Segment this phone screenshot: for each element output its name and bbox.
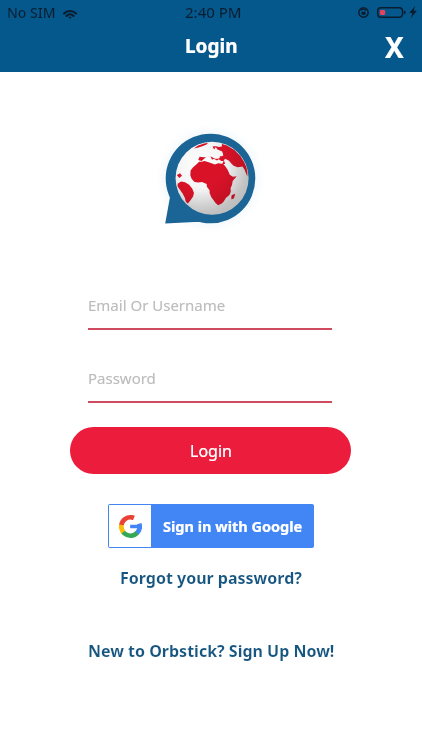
button[interactable]: New to Orbstick? Sign Up Now! <box>78 636 345 666</box>
staticText: Forgot your password? <box>120 567 302 589</box>
staticText: Login <box>190 440 232 462</box>
staticText: Email Or Username <box>88 295 226 315</box>
staticText: Login <box>185 33 238 59</box>
button[interactable]: Password <box>88 368 332 403</box>
button[interactable]: Close <box>375 29 413 67</box>
staticText: New to Orbstick? Sign Up Now! <box>88 640 335 662</box>
staticText: X <box>385 28 404 66</box>
button[interactable]: Login <box>70 427 351 474</box>
staticText: No SIM <box>7 3 56 22</box>
button[interactable]: Forgot your password? <box>110 563 312 593</box>
staticText: Password <box>88 368 156 388</box>
button[interactable]: Sign in with Google <box>108 504 314 548</box>
button[interactable]: Email Or Username <box>88 295 332 330</box>
staticText: 2:40 PM <box>185 2 242 22</box>
staticText: Sign in with Google <box>163 516 303 536</box>
